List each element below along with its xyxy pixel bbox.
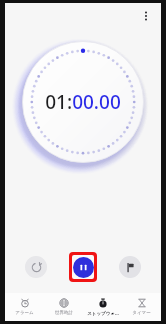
- button[interactable]: アラーム: [5, 293, 44, 321]
- staticText: アラーム: [15, 310, 34, 316]
- button[interactable]: 世界時計: [44, 293, 83, 321]
- button[interactable]: More options: [135, 5, 157, 27]
- staticText: ストップウォ…: [87, 310, 119, 316]
- button[interactable]: Lap: [119, 256, 141, 278]
- staticText: 01:00.00: [45, 89, 121, 115]
- staticText: タイマー: [132, 310, 151, 316]
- button[interactable]: タイマー: [122, 293, 161, 321]
- staticText: 世界時計: [55, 310, 73, 316]
- button[interactable]: ストップウォ…: [83, 293, 122, 321]
- button[interactable]: Pause: [72, 255, 94, 279]
- button[interactable]: Reset: [25, 256, 47, 278]
